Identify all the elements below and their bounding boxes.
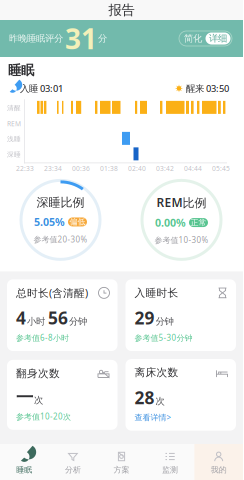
staticText: 醒来 03:50 (186, 82, 229, 95)
staticText: 参考值6-8小时 (16, 332, 69, 343)
staticText: 报告 (108, 2, 134, 18)
staticText: 03:42 (156, 164, 174, 173)
button[interactable]: 简化 (180, 32, 205, 44)
button[interactable]: 睡眠 (0, 444, 49, 480)
staticText: 分析 (65, 465, 81, 475)
button[interactable]: 我的 (194, 444, 243, 480)
staticText: 昨晚睡眠评分 (9, 33, 63, 44)
staticText: 分钟 (69, 316, 87, 327)
staticText: 4 (16, 306, 26, 329)
staticText: 查看详情> (134, 412, 171, 423)
staticText: 清醒 (7, 104, 21, 112)
staticText: 5.05% (34, 215, 65, 229)
staticText: 28 (134, 386, 154, 409)
staticText: 05:45 (212, 164, 230, 173)
staticText: 简化 (184, 33, 202, 44)
staticText: 00:36 (72, 164, 90, 173)
staticText: 01:38 (100, 164, 118, 173)
staticText: 深睡 (7, 150, 21, 159)
staticText: 翻身次数 (16, 367, 60, 380)
staticText: 方案 (113, 465, 129, 475)
staticText: 离床次数 (134, 366, 178, 379)
button[interactable]: 详细 (205, 32, 230, 44)
staticText: 02:40 (128, 164, 146, 173)
staticText: 次 (34, 394, 43, 406)
staticText: 29 (134, 306, 154, 329)
staticText: 分钟 (155, 316, 173, 327)
staticText: 偏低 (69, 217, 85, 227)
button[interactable]: 监测 (146, 444, 194, 480)
button[interactable]: 分析 (49, 444, 97, 480)
staticText: REM比例 (156, 194, 206, 210)
staticText: 参考值10-30% (154, 235, 208, 245)
staticText: 入睡时长 (134, 286, 178, 299)
staticText: 04:44 (184, 164, 202, 173)
staticText: 监测 (162, 465, 178, 475)
staticText: 分 (98, 33, 107, 44)
button[interactable]: 方案 (97, 444, 146, 480)
staticText: 23:34 (44, 164, 62, 173)
staticText: 我的 (211, 465, 227, 475)
staticText: 31 (65, 20, 97, 57)
staticText: 总时长(含清醒) (16, 286, 88, 300)
staticText: 入睡 03:01 (20, 82, 63, 95)
staticText: 次 (155, 395, 164, 407)
staticText: 小时 (27, 316, 45, 327)
staticText: REM (7, 119, 21, 128)
staticText: 一 (16, 387, 33, 408)
staticText: 参考值10-20次 (16, 411, 71, 422)
staticText: 详细 (209, 33, 227, 44)
staticText: 正常 (190, 218, 206, 227)
staticText: 56 (48, 306, 68, 329)
staticText: 睡眠 (8, 62, 34, 78)
staticText: 参考值5-30分钟 (134, 332, 192, 343)
staticText: 0.00% (155, 215, 186, 230)
staticText: 睡眠 (16, 465, 32, 475)
staticText: 浅睡 (7, 135, 21, 143)
staticText: 22:33 (16, 164, 34, 173)
staticText: 深睡比例 (36, 195, 84, 210)
staticText: 参考值20-30% (33, 234, 87, 245)
